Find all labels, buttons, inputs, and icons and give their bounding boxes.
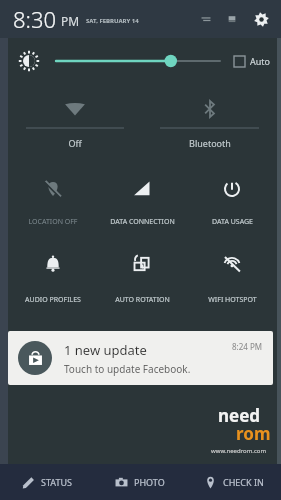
other: Signal (199, 12, 213, 26)
button[interactable]: STATUS (0, 464, 93, 500)
other: DATA CONNECTION (131, 178, 153, 200)
staticText: Bluetooth (189, 137, 231, 149)
button[interactable]: AUDIO PROFILES (8, 237, 97, 315)
other: Bluetooth (199, 98, 221, 120)
staticText: 1 new update (64, 341, 147, 359)
button[interactable]: DATA USAGE (187, 162, 277, 237)
staticText: Touch to update Facebook. (64, 362, 191, 376)
button[interactable]: 1 new update (8, 331, 273, 385)
button[interactable]: Brightness (14, 46, 44, 76)
staticText: CHECK IN (223, 476, 264, 488)
button[interactable]: Wi-Fi (8, 84, 142, 162)
staticText: PHOTO (134, 476, 165, 488)
staticText: LOCATION OFF (28, 217, 78, 227)
staticText: need (218, 404, 261, 427)
staticText: AUDIO PROFILES (25, 295, 81, 305)
other: LOCATION OFF (42, 178, 64, 200)
staticText: STATUS (41, 476, 72, 488)
staticText: SAT, FEBRUARY 14 (86, 17, 139, 25)
button[interactable]: Auto (234, 55, 271, 67)
other: AUTO ROTATION (131, 253, 153, 275)
staticText: DATA CONNECTION (110, 217, 175, 227)
other: DATA USAGE (221, 178, 243, 200)
button[interactable]: AUTO ROTATION (97, 237, 187, 315)
other: Wi-Fi (64, 98, 86, 120)
staticText: 8:30 (13, 4, 57, 34)
button[interactable]: LOCATION OFF (8, 162, 97, 237)
staticText: DATA USAGE (212, 217, 253, 227)
staticText: Auto (250, 55, 271, 67)
button[interactable]: Bluetooth (142, 84, 277, 162)
button[interactable]: DATA CONNECTION (97, 162, 187, 237)
button[interactable]: Settings (251, 9, 271, 29)
staticText: www.needrom.com (211, 447, 267, 455)
staticText: 8:24 PM (232, 341, 263, 352)
button[interactable]: CHECK IN (187, 464, 281, 500)
button[interactable] (56, 48, 220, 74)
staticText: Off (68, 137, 82, 149)
staticText: WIFI HOTSPOT (208, 295, 257, 305)
other: WIFI HOTSPOT (221, 253, 243, 275)
staticText: rom (236, 422, 271, 445)
staticText: AUTO ROTATION (115, 295, 170, 305)
button[interactable]: WIFI HOTSPOT (187, 237, 277, 315)
button[interactable]: PHOTO (93, 464, 187, 500)
other: AUDIO PROFILES (42, 253, 64, 275)
staticText: PM (61, 13, 80, 29)
other: Battery (225, 12, 239, 26)
